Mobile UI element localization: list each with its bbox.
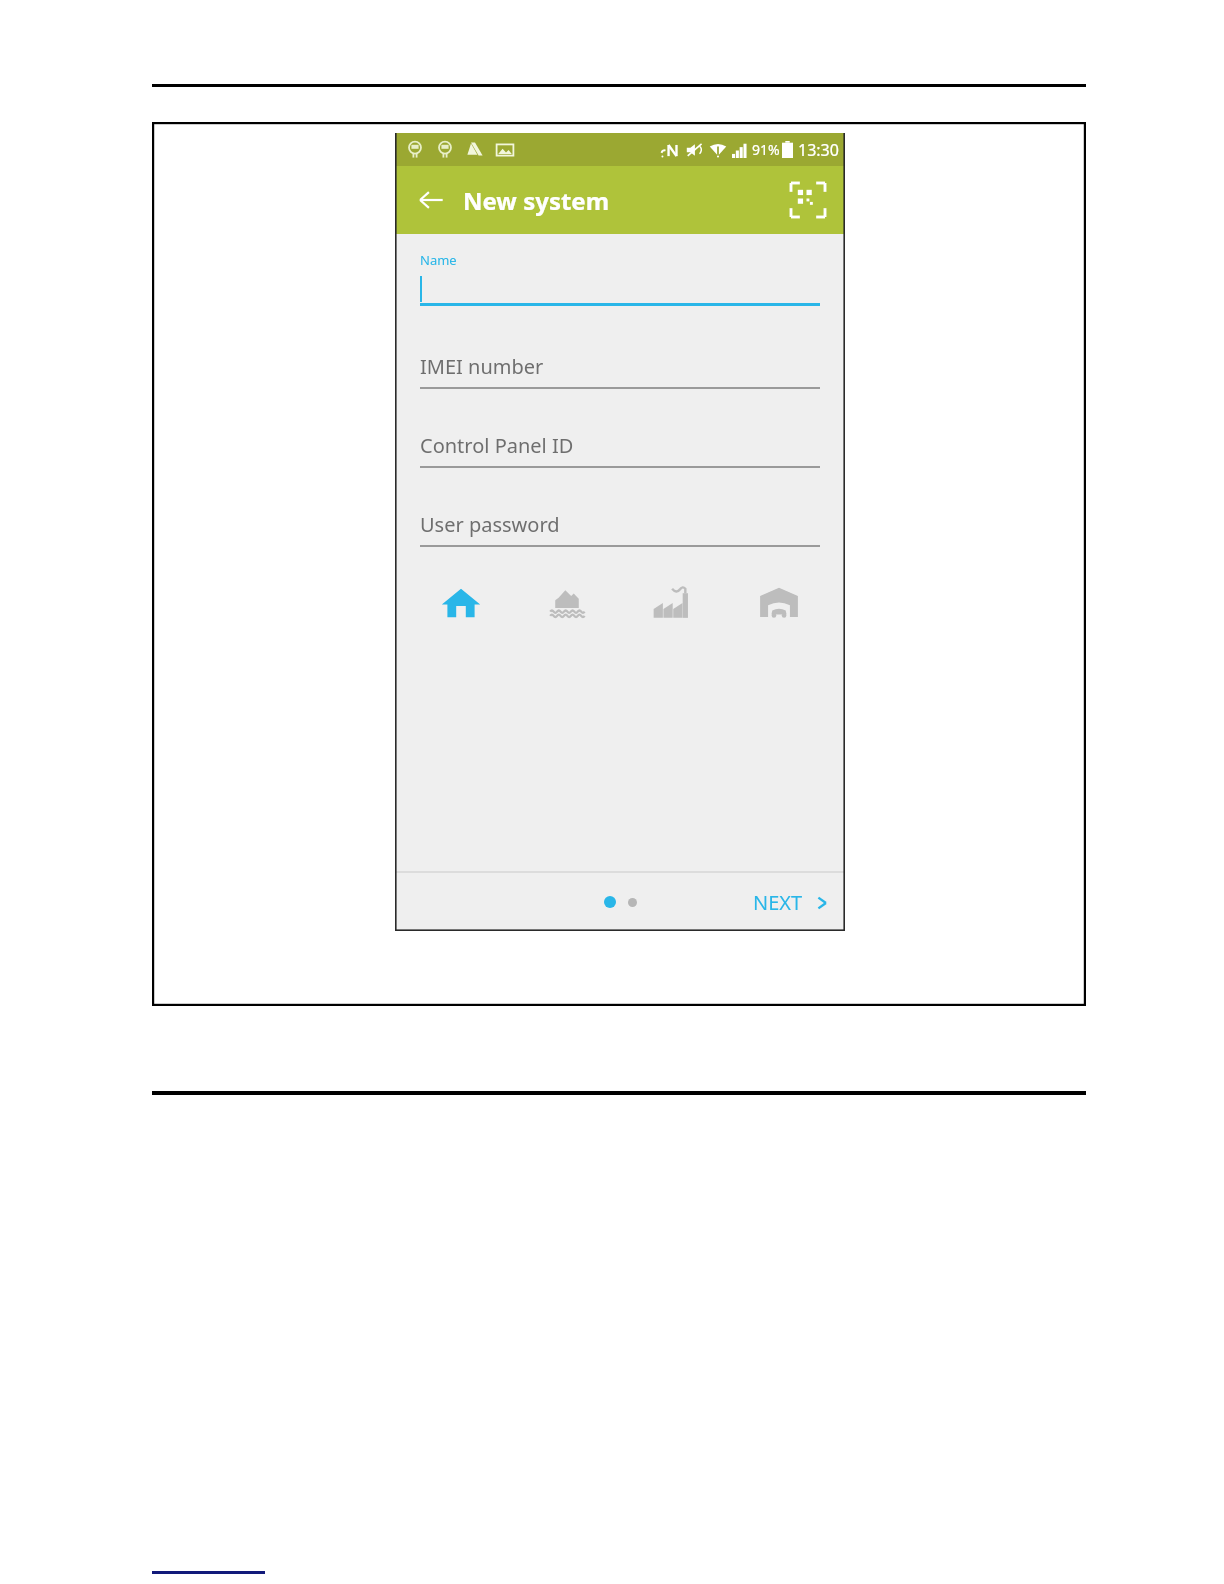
button[interactable]: Back xyxy=(409,178,453,222)
button[interactable]: Control Panel ID xyxy=(420,429,820,468)
staticText: New system xyxy=(463,184,610,217)
staticText: IMEI number xyxy=(420,353,544,380)
staticText: Name xyxy=(420,251,457,269)
button[interactable]: Garage xyxy=(750,573,808,631)
staticText: 13:30 xyxy=(798,139,839,161)
button[interactable]: Scan QR code xyxy=(785,177,831,223)
button[interactable]: House xyxy=(432,573,490,631)
staticText: Control Panel ID xyxy=(420,432,574,459)
button[interactable]: Factory xyxy=(644,573,702,631)
button[interactable]: Page 1 xyxy=(604,896,616,908)
button[interactable]: NEXT xyxy=(753,889,831,916)
staticText: 91% xyxy=(752,140,780,159)
button[interactable]: IMEI number xyxy=(420,350,820,389)
button[interactable]: House on water xyxy=(538,573,596,631)
button[interactable]: Name xyxy=(420,251,820,306)
staticText: User password xyxy=(420,511,560,538)
staticText: NEXT xyxy=(753,889,803,916)
button[interactable]: Page 2 xyxy=(628,898,637,907)
button[interactable]: User password xyxy=(420,508,820,547)
